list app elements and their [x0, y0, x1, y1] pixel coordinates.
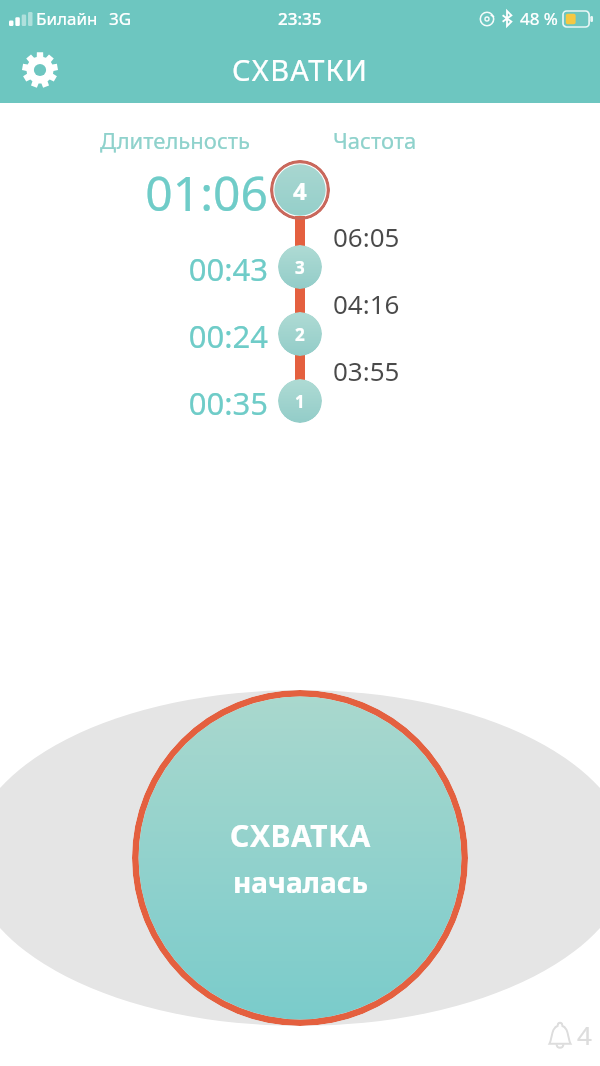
staticText: 4: [577, 1017, 592, 1052]
staticText: 03:55: [333, 353, 400, 388]
staticText: СХВАТКИ: [232, 50, 369, 89]
staticText: 23:35: [278, 7, 322, 30]
button[interactable]: 00:35: [58, 382, 268, 424]
staticText: 48 %: [520, 7, 558, 30]
staticText: СХВАТКА: [230, 815, 371, 856]
staticText: 1: [295, 390, 305, 413]
staticText: 2: [295, 323, 305, 346]
staticText: 4: [293, 174, 307, 207]
staticText: 00:24: [58, 315, 268, 357]
button[interactable]: 1: [278, 379, 322, 423]
button[interactable]: 01:06: [58, 160, 268, 225]
button[interactable]: Notifications: [544, 1017, 592, 1052]
staticText: 06:05: [333, 219, 400, 254]
staticText: 01:06: [58, 160, 268, 225]
button[interactable]: 00:24: [58, 315, 268, 357]
staticText: 00:43: [58, 248, 268, 290]
button[interactable]: Settings: [14, 44, 66, 96]
button[interactable]: 06:05: [333, 219, 400, 254]
staticText: 04:16: [333, 286, 400, 321]
staticText: Билайн: [36, 7, 98, 30]
staticText: Частота: [333, 125, 417, 155]
staticText: 3G: [109, 7, 132, 30]
button[interactable]: 3: [278, 245, 322, 289]
button[interactable]: 4: [270, 160, 330, 220]
staticText: Длительность: [100, 125, 250, 155]
button[interactable]: 00:43: [58, 248, 268, 290]
button[interactable]: 2: [278, 312, 322, 356]
button[interactable]: 03:55: [333, 353, 400, 388]
staticText: началась: [233, 863, 368, 901]
staticText: 3: [295, 256, 305, 279]
staticText: 00:35: [58, 382, 268, 424]
button[interactable]: СХВАТКА: [132, 690, 468, 1026]
button[interactable]: 04:16: [333, 286, 400, 321]
